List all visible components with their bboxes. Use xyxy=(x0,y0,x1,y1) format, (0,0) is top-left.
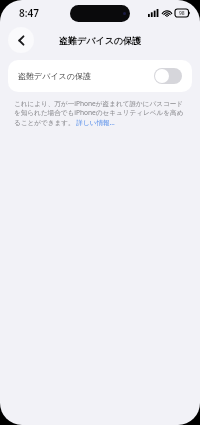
staticText: 盗難デバイスの保護 xyxy=(59,35,142,46)
button[interactable]: 盗難デバイスの保護 オフ xyxy=(154,68,182,84)
staticText: 8:47 xyxy=(19,6,39,20)
staticText: これにより、万が一iPhoneが盗まれて誰かにパスコードを知られた場合でもiPh… xyxy=(14,99,188,127)
button[interactable]: 盗難デバイスの保護 xyxy=(8,60,192,92)
button[interactable]: 戻る xyxy=(8,27,34,53)
staticText: 98 xyxy=(179,10,185,17)
staticText: 盗難デバイスの保護 xyxy=(18,71,154,81)
